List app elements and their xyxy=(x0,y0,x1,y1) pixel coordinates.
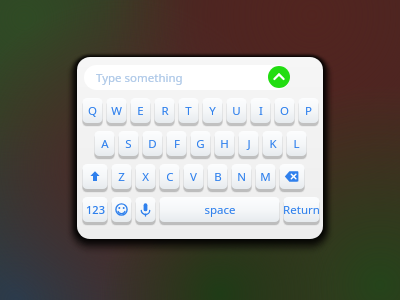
button[interactable]: A xyxy=(94,131,115,158)
button[interactable]: W xyxy=(106,98,127,125)
button[interactable]: Emoji xyxy=(111,197,132,224)
staticText: 123 xyxy=(86,202,105,217)
button[interactable]: O xyxy=(274,98,295,125)
staticText: Q xyxy=(88,103,97,119)
staticText: O xyxy=(280,103,289,119)
staticText: S xyxy=(125,136,132,152)
staticText: E xyxy=(137,103,144,119)
button[interactable]: R xyxy=(154,98,175,125)
button[interactable]: T xyxy=(178,98,199,125)
staticText: U xyxy=(232,103,241,119)
button[interactable]: H xyxy=(214,131,235,158)
button[interactable]: G xyxy=(190,131,211,158)
button[interactable]: P xyxy=(298,98,319,125)
button[interactable]: space xyxy=(159,197,280,224)
button[interactable]: Y xyxy=(202,98,223,125)
staticText: F xyxy=(174,136,180,152)
button[interactable]: Send xyxy=(268,66,290,88)
button[interactable]: S xyxy=(118,131,139,158)
button[interactable]: Q xyxy=(82,98,103,125)
staticText: Y xyxy=(209,103,216,119)
staticText: Type something xyxy=(96,70,183,86)
staticText: I xyxy=(259,103,263,119)
button[interactable]: M xyxy=(255,164,276,191)
button[interactable]: L xyxy=(286,131,307,158)
staticText: space xyxy=(204,202,236,218)
button[interactable]: V xyxy=(183,164,204,191)
button[interactable]: Voice input xyxy=(135,197,156,224)
button[interactable]: N xyxy=(231,164,252,191)
button[interactable]: D xyxy=(142,131,163,158)
button[interactable]: 123 xyxy=(82,197,108,224)
button[interactable]: F xyxy=(166,131,187,158)
staticText: L xyxy=(293,136,300,152)
button[interactable]: I xyxy=(250,98,271,125)
staticText: T xyxy=(185,103,192,119)
staticText: G xyxy=(196,136,205,152)
button[interactable]: Z xyxy=(111,164,132,191)
button[interactable]: C xyxy=(159,164,180,191)
staticText: H xyxy=(220,136,229,152)
staticText: M xyxy=(260,169,271,185)
staticText: N xyxy=(237,169,246,185)
button[interactable]: E xyxy=(130,98,151,125)
staticText: R xyxy=(161,103,169,119)
staticText: W xyxy=(111,103,122,119)
staticText: K xyxy=(269,136,277,152)
button[interactable]: K xyxy=(262,131,283,158)
staticText: V xyxy=(190,169,197,185)
staticText: J xyxy=(247,136,251,152)
staticText: Return xyxy=(283,202,320,218)
staticText: D xyxy=(148,136,157,152)
button[interactable]: U xyxy=(226,98,247,125)
button[interactable]: B xyxy=(207,164,228,191)
staticText: C xyxy=(166,169,174,185)
button[interactable]: Shift xyxy=(82,164,108,191)
button[interactable]: J xyxy=(238,131,259,158)
staticText: X xyxy=(142,169,149,185)
button[interactable]: Type something xyxy=(84,65,290,90)
button[interactable]: X xyxy=(135,164,156,191)
staticText: P xyxy=(305,103,312,119)
staticText: A xyxy=(101,136,109,152)
button[interactable]: Return xyxy=(283,197,320,224)
staticText: B xyxy=(214,169,222,185)
staticText: Z xyxy=(118,169,125,185)
button[interactable]: Backspace xyxy=(279,164,305,191)
